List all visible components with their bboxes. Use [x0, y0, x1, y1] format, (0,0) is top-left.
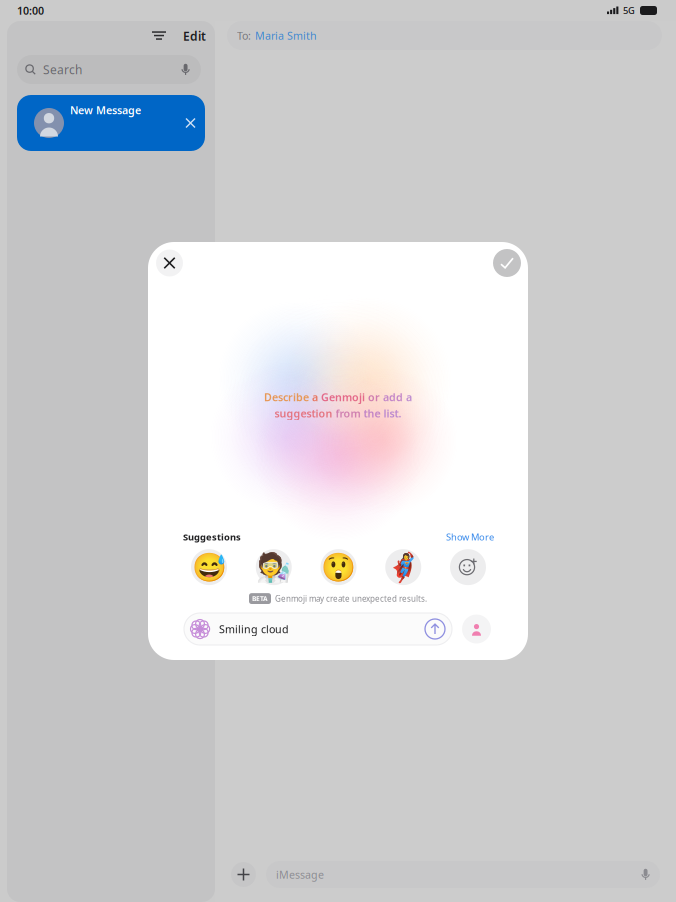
button[interactable]: Filter conversations [145, 24, 173, 48]
button[interactable]: Show More [446, 531, 494, 543]
staticText: list. [383, 406, 401, 420]
button[interactable]: Person reference [462, 614, 491, 643]
staticText: 10:00 [17, 3, 44, 18]
staticText: Smiling cloud [219, 622, 289, 636]
staticText: Show More [446, 531, 494, 543]
staticText: New Message [70, 103, 141, 117]
button[interactable]: Search [17, 55, 201, 84]
staticText: 😲 [321, 551, 356, 583]
staticText: 🧑‍🔬 [256, 551, 291, 583]
button[interactable]: Edit [173, 24, 208, 48]
button[interactable]: Add attachment [231, 862, 256, 887]
staticText: iMessage [276, 867, 324, 882]
button[interactable]: Scientist [256, 549, 292, 585]
staticText: a [312, 390, 321, 404]
staticText: add [383, 390, 406, 404]
staticText: 5G [623, 4, 635, 17]
staticText: Maria Smith [255, 28, 317, 43]
button[interactable]: New Message [17, 95, 205, 151]
staticText: Suggestions [183, 531, 241, 543]
staticText: Genmoji may create unexpected results. [275, 593, 427, 604]
staticText: Describe [264, 390, 312, 404]
staticText: Edit [183, 28, 206, 44]
staticText: 🦸‍♀️ [386, 551, 421, 583]
staticText: suggestion [274, 406, 335, 420]
staticText: from [335, 406, 363, 420]
staticText: Genmoji [321, 390, 368, 404]
button[interactable]: Close [156, 249, 183, 276]
staticText: a [406, 390, 412, 404]
button[interactable]: Smiling face with sweat [191, 549, 227, 585]
staticText: 😅 [191, 551, 226, 583]
staticText: or [368, 390, 383, 404]
staticText: the [363, 406, 383, 420]
staticText: Search [43, 61, 82, 77]
staticText: To: [237, 28, 251, 43]
button[interactable]: More emoji [450, 549, 486, 585]
button[interactable]: Astonished face [320, 549, 356, 585]
button[interactable]: Superhero [385, 549, 421, 585]
staticText: BETA [252, 594, 268, 603]
button[interactable]: Done [493, 249, 521, 277]
